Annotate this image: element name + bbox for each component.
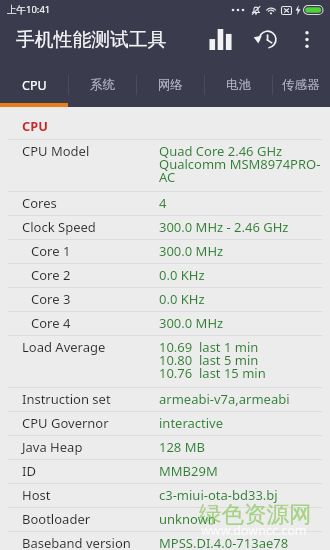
- staticText: Load Average: [22, 338, 159, 356]
- staticText: Clock Speed: [22, 218, 159, 236]
- staticText: Core 4: [31, 314, 159, 332]
- button[interactable]: Core 2: [0, 264, 330, 287]
- staticText: 绿色资源网: [199, 500, 312, 528]
- staticText: unknown: [159, 510, 216, 528]
- button[interactable]: 电池: [204, 60, 272, 103]
- staticText: ID: [22, 462, 159, 480]
- staticText: CPU: [22, 117, 48, 134]
- staticText: MPSS.DI.4.0-713ae78: [159, 534, 289, 550]
- button[interactable]: 网络: [136, 60, 204, 103]
- button[interactable]: CPU: [0, 60, 68, 103]
- staticText: 0.0 KHz: [159, 290, 205, 308]
- staticText: Core 2: [31, 266, 159, 284]
- button[interactable]: Core 4: [0, 312, 330, 335]
- button[interactable]: CPU Governor: [0, 412, 330, 435]
- button[interactable]: Core 1: [0, 240, 330, 263]
- staticText: CPU Model: [22, 142, 159, 160]
- staticText: 300.0 MHz - 2.46 GHz: [159, 218, 289, 236]
- button[interactable]: Core 3: [0, 288, 330, 311]
- staticText: Host: [22, 486, 159, 504]
- staticText: armeabi-v7a,armeabi: [159, 390, 290, 408]
- button[interactable]: Load Average: [0, 336, 330, 387]
- staticText: Core 3: [31, 290, 159, 308]
- staticText: Java Heap: [22, 438, 159, 456]
- staticText: Core 1: [31, 242, 159, 260]
- button[interactable]: 系统: [68, 60, 136, 103]
- button[interactable]: ID: [0, 460, 330, 483]
- staticText: 手机性能测试工具: [16, 28, 167, 52]
- button[interactable]: Instruction set: [0, 388, 330, 411]
- button[interactable]: Cores: [0, 192, 330, 215]
- button[interactable]: More options: [291, 19, 323, 60]
- staticText: 300.0 MHz: [159, 314, 224, 332]
- staticText: 电池: [226, 77, 251, 93]
- button[interactable]: Java Heap: [0, 436, 330, 459]
- staticText: 传感器: [282, 77, 320, 93]
- staticText: 0.0 KHz: [159, 266, 205, 284]
- staticText: www.downcc.com: [201, 522, 307, 539]
- button[interactable]: Host: [0, 484, 330, 507]
- button[interactable]: Baseband version: [0, 532, 330, 550]
- staticText: c3-miui-ota-bd33.bj: [159, 486, 278, 504]
- staticText: CPU: [22, 77, 47, 94]
- button[interactable]: 传感器: [272, 60, 330, 103]
- staticText: Instruction set: [22, 390, 159, 408]
- staticText: 128 MB: [159, 438, 205, 456]
- staticText: CPU Governor: [22, 414, 159, 432]
- staticText: Bootloader: [22, 510, 159, 528]
- staticText: 300.0 MHz: [159, 242, 224, 260]
- button[interactable]: Benchmark: [200, 19, 240, 60]
- staticText: interactive: [159, 414, 224, 432]
- staticText: 4: [159, 194, 167, 212]
- button[interactable]: History: [246, 19, 286, 60]
- button[interactable]: Clock Speed: [0, 216, 330, 239]
- button[interactable]: CPU Model: [0, 140, 330, 191]
- staticText: 10.69 last 1 min 10.80 last 5 min 10.76 …: [159, 338, 266, 382]
- staticText: 系统: [90, 77, 115, 93]
- staticText: Quad Core 2.46 GHz Qualcomm MSM8974PRO- …: [159, 142, 321, 186]
- staticText: 网络: [158, 77, 183, 93]
- staticText: Cores: [22, 194, 159, 212]
- staticText: 上午10:41: [7, 3, 51, 16]
- staticText: MMB29M: [159, 462, 218, 480]
- button[interactable]: Bootloader: [0, 508, 330, 531]
- staticText: Baseband version: [22, 534, 159, 550]
